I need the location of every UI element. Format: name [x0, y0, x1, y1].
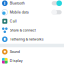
- button[interactable]: Mobile data: [0, 8, 64, 17]
- button[interactable]: Display: [0, 56, 64, 64]
- staticText: Sound: [10, 50, 20, 54]
- button[interactable]: Call: [0, 17, 64, 26]
- staticText: Bluetooth: [10, 1, 25, 5]
- staticText: Share & connect: [10, 28, 36, 32]
- staticText: Call: [10, 19, 17, 23]
- button[interactable]: Tethering & networks: [0, 35, 64, 44]
- staticText: Display: [10, 59, 23, 63]
- button[interactable]: Bluetooth: [0, 0, 64, 8]
- button[interactable]: Share & connect: [0, 26, 64, 35]
- button[interactable]: Sound: [0, 47, 64, 56]
- staticText: Tethering & networks: [10, 37, 44, 41]
- staticText: Mobile data: [10, 10, 29, 14]
